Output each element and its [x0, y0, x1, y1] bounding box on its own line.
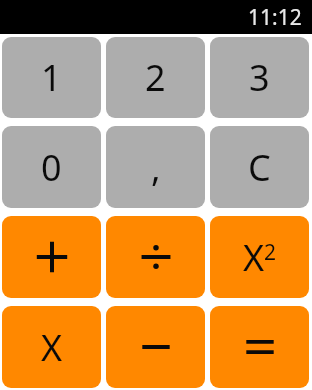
button[interactable]: 0 — [2, 126, 101, 208]
button[interactable]: 2 — [106, 37, 205, 118]
staticText: X2 — [243, 233, 277, 282]
button[interactable]: , — [106, 126, 205, 208]
button[interactable]: C — [210, 126, 309, 208]
staticText: , — [151, 143, 161, 192]
staticText: 0 — [41, 143, 62, 192]
button[interactable]: Divide — [106, 216, 205, 298]
staticText: 11:12 — [248, 3, 302, 32]
button[interactable]: Multiply — [2, 306, 101, 388]
staticText: C — [248, 143, 271, 192]
button[interactable]: x squared — [210, 216, 309, 298]
button[interactable]: Plus — [2, 216, 101, 298]
staticText: 2 — [145, 53, 166, 102]
staticText: 1 — [41, 53, 62, 102]
button[interactable]: 3 — [210, 37, 309, 118]
button[interactable]: 1 — [2, 37, 101, 118]
staticText: 3 — [249, 53, 270, 102]
staticText: X — [41, 323, 63, 372]
button[interactable]: Equals — [210, 306, 309, 388]
button[interactable]: Minus — [106, 306, 205, 388]
